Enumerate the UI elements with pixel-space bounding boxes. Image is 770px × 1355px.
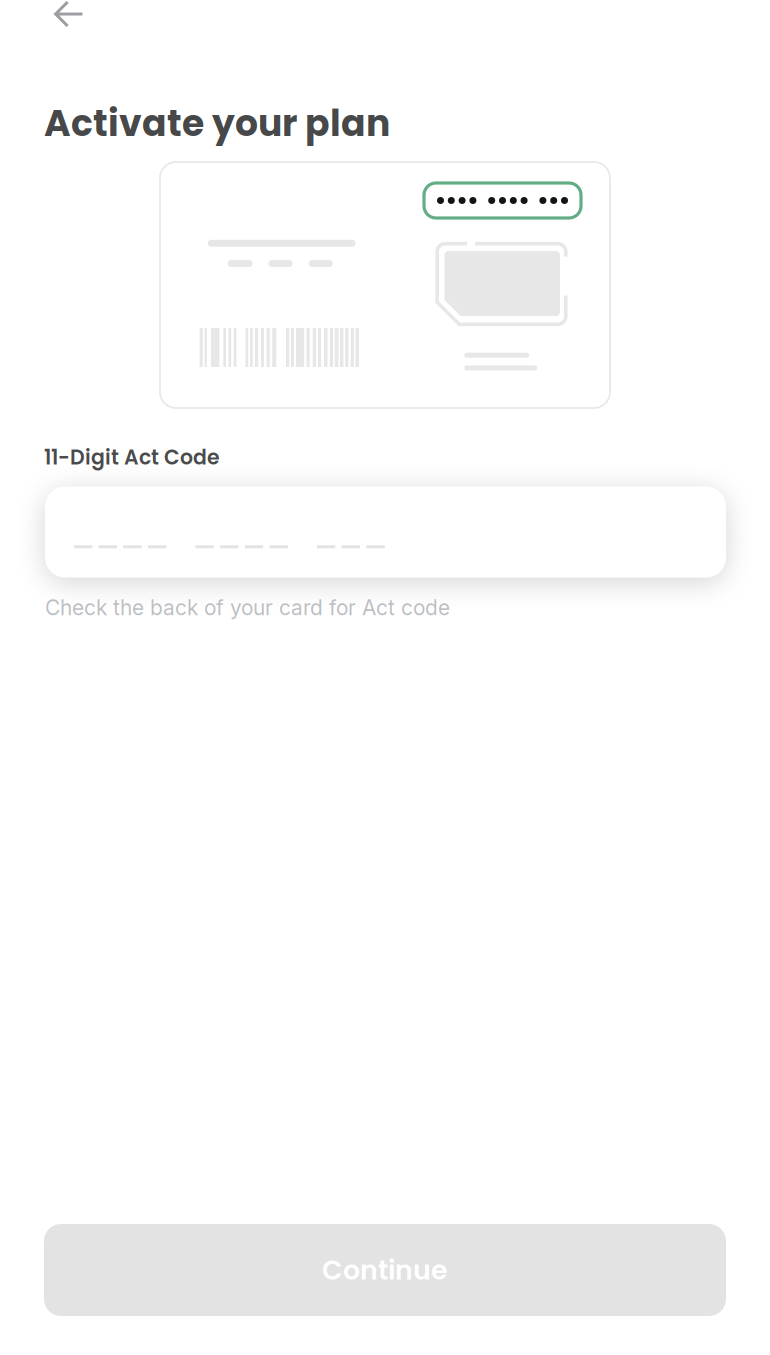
staticText: 11-Digit Act Code [44, 443, 220, 472]
staticText: Check the back of your card for Act code [45, 595, 450, 620]
staticText: Continue [322, 1251, 448, 1289]
button[interactable]: Back [0, 0, 84, 28]
staticText: Activate your plan [44, 98, 390, 149]
button[interactable]: Continue [44, 1224, 726, 1316]
